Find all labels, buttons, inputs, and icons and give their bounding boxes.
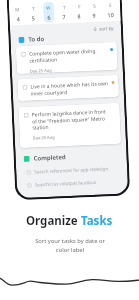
staticText: Tasks [81,213,113,229]
staticText: sort by [99,25,114,31]
staticText: S [93,3,96,9]
staticText: Due 25 Aug [30,68,52,74]
staticText: To do [28,35,45,44]
staticText: Complete open water diving certification [29,47,107,64]
button[interactable]: To do [10,31,122,45]
staticText: Perform lezginka dance in front of the "… [32,108,110,131]
button[interactable]: M [12,3,24,24]
staticText: Organize [26,213,81,229]
staticText: T [32,5,35,11]
button[interactable]: T [28,2,39,24]
staticText: W [46,5,51,11]
button[interactable]: Sort by [92,24,115,33]
staticText: Due 25 Aug [33,135,55,141]
button[interactable]: Complete open water diving certification [16,42,118,74]
staticText: Search references for app redesign [34,165,108,174]
button[interactable]: T [59,1,70,22]
button[interactable]: Live in a house which has its own inner … [17,75,119,101]
button[interactable]: Search references for app redesign [21,163,122,177]
staticText: M [15,6,20,12]
button[interactable]: S [89,0,100,21]
staticText: S [109,2,112,8]
staticText: 9 [92,12,97,19]
button[interactable]: F [74,0,85,22]
staticText: 4 [16,15,21,22]
button[interactable]: Completed [15,149,127,164]
button[interactable]: Perform lezginka dance in front of the "… [18,103,121,148]
button[interactable]: W [43,1,55,23]
staticText: Sort your tasks by date or color label [35,237,105,253]
staticText: Live in a house which has its own inner … [30,80,109,97]
staticText: SearchCras volutpat faucibus [35,179,97,187]
staticText: Completed [33,153,66,163]
staticText: 8 [77,12,82,19]
staticText: T [63,4,66,10]
staticText: 5 [31,14,36,21]
button[interactable]: SearchCras volutpat faucibus [22,176,123,190]
staticText: F [78,3,81,9]
staticText: 10 [107,11,115,18]
staticText: 6 [47,14,52,21]
staticText: 7 [62,13,67,20]
button[interactable]: S [104,0,118,20]
